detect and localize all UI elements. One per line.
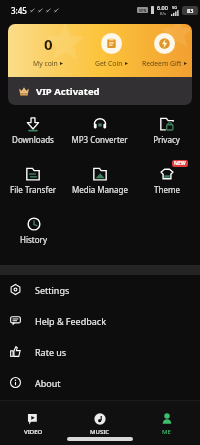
staticText: K/s	[160, 11, 166, 16]
staticText: VIDEO	[24, 428, 43, 435]
button[interactable]: VIDEO	[0, 401, 66, 435]
staticText: File Transfer	[10, 184, 56, 195]
button[interactable]: Downloads	[0, 107, 66, 157]
staticText: 0	[44, 34, 53, 54]
button[interactable]: Get Coin	[80, 24, 142, 77]
staticText: VPN	[139, 8, 147, 13]
button[interactable]: MUSIC	[66, 401, 133, 435]
staticText: Redeem Gift	[142, 59, 182, 68]
staticText: 5G	[172, 5, 178, 10]
staticText: ME	[162, 428, 171, 435]
button[interactable]: About	[0, 367, 200, 398]
staticText: 3:45	[11, 5, 27, 16]
staticText: Settings	[35, 284, 70, 296]
staticText: MUSIC	[90, 428, 110, 435]
staticText: Media Manage	[72, 184, 128, 195]
button[interactable]: ME	[133, 401, 200, 435]
button[interactable]: MP3 Converter	[66, 107, 133, 157]
button[interactable]: Redeem Gift	[133, 24, 192, 77]
button[interactable]: 0	[17, 24, 79, 77]
button[interactable]: File Transfer	[0, 157, 66, 207]
staticText: NEW	[174, 160, 186, 167]
staticText: Privacy	[153, 134, 180, 145]
staticText: My coin	[33, 59, 58, 68]
staticText: Downloads	[12, 134, 54, 145]
staticText: VIP Activated	[36, 85, 100, 98]
staticText: 6.00	[157, 4, 168, 11]
button[interactable]: Help & Feedback	[0, 305, 200, 336]
button[interactable]: Media Manage	[66, 157, 133, 207]
button[interactable]: VIP Activated	[8, 77, 192, 105]
staticText: About	[35, 377, 61, 389]
button[interactable]: History	[0, 207, 66, 257]
staticText: Rate us	[35, 346, 67, 358]
button[interactable]: NEW	[133, 157, 200, 207]
staticText: Get Coin	[95, 59, 123, 68]
button[interactable]: Privacy	[133, 107, 200, 157]
button[interactable]: Settings	[0, 274, 200, 305]
staticText: Help & Feedback	[35, 315, 106, 327]
staticText: History	[20, 234, 47, 245]
button[interactable]: Rate us	[0, 336, 200, 367]
staticText: Theme	[154, 184, 180, 195]
staticText: 83	[187, 7, 194, 14]
staticText: MP3 Converter	[71, 134, 128, 145]
